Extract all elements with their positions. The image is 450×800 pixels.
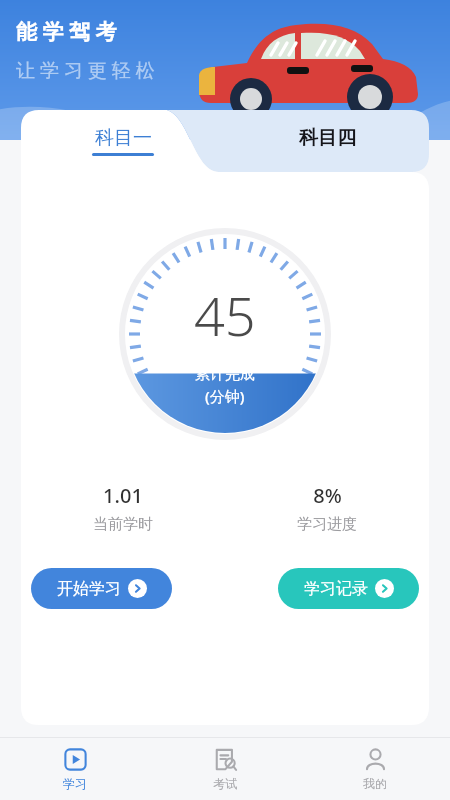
button[interactable]: 我的	[300, 738, 450, 800]
staticText: 1.01	[103, 482, 143, 509]
staticText: 能 学 驾 考	[16, 17, 117, 46]
staticText: 开始学习	[57, 579, 121, 599]
staticText: 累计完成	[195, 365, 255, 384]
button[interactable]: 科目一	[21, 110, 225, 172]
staticText: 45	[194, 278, 256, 352]
button[interactable]: 学习	[0, 738, 150, 800]
staticText: 让 学 习 更 轻 松	[16, 57, 155, 83]
staticText: 科目四	[299, 126, 356, 150]
staticText: 科目一	[95, 126, 152, 150]
staticText: (分钟)	[205, 386, 245, 406]
button[interactable]: 学习记录	[278, 568, 419, 609]
button[interactable]: 考试	[150, 738, 300, 800]
staticText: 学习记录	[304, 579, 368, 599]
staticText: 我的	[363, 776, 387, 791]
staticText: 8%	[313, 482, 342, 509]
button[interactable]: 科目四	[225, 110, 429, 172]
staticText: 考试	[213, 776, 237, 791]
staticText: 学习	[63, 776, 87, 791]
staticText: 学习进度	[297, 515, 357, 534]
staticText: 当前学时	[93, 515, 153, 534]
button[interactable]: 开始学习	[31, 568, 172, 609]
